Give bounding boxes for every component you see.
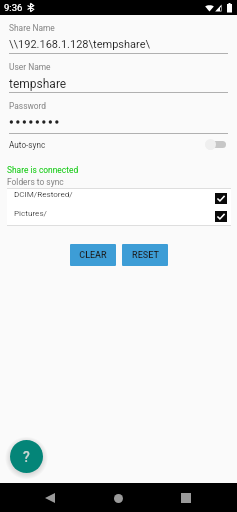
staticText: tempshare bbox=[9, 77, 67, 91]
staticText: Folders to sync bbox=[7, 177, 64, 187]
staticText: Share Name bbox=[9, 23, 55, 33]
button[interactable]: Password bbox=[0, 93, 237, 134]
button[interactable]: Pictures/ bbox=[7, 207, 231, 225]
staticText: CLEAR bbox=[79, 250, 107, 261]
staticText: 9:36 bbox=[4, 2, 23, 13]
button[interactable]: Auto-sync bbox=[9, 134, 226, 155]
staticText: RESET bbox=[132, 250, 159, 261]
button[interactable]: CLEAR bbox=[70, 244, 116, 266]
staticText: Pictures/ bbox=[14, 208, 47, 217]
staticText: Auto-sync bbox=[9, 140, 46, 150]
button[interactable]: Home bbox=[104, 484, 132, 512]
button[interactable]: Help bbox=[10, 440, 43, 473]
button[interactable]: User Name bbox=[0, 54, 237, 93]
button[interactable]: Back bbox=[36, 484, 64, 512]
staticText: ? bbox=[23, 449, 30, 465]
staticText: User Name bbox=[9, 62, 51, 72]
staticText: Password bbox=[9, 101, 47, 111]
button[interactable]: DCIM/Restored/ bbox=[7, 189, 231, 207]
staticText: Share is connected bbox=[7, 165, 79, 175]
staticText: DCIM/Restored/ bbox=[14, 189, 73, 198]
staticText: \\192.168.1.128\tempshare\ bbox=[9, 38, 151, 51]
button[interactable]: Recent apps bbox=[172, 484, 200, 512]
button[interactable]: Share Name bbox=[0, 15, 237, 54]
button[interactable]: RESET bbox=[122, 244, 168, 266]
